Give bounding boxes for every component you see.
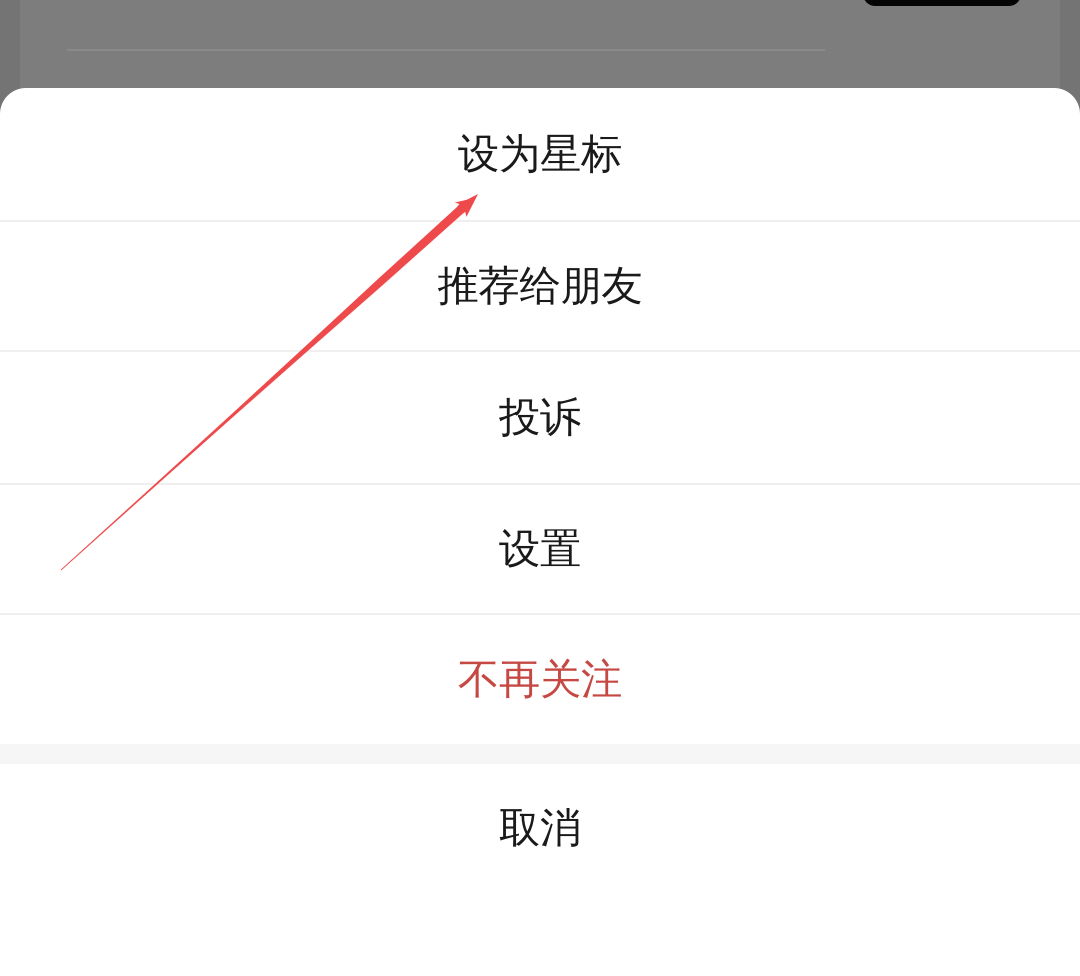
staticText: 取消: [499, 803, 581, 853]
staticText: 设置: [499, 524, 581, 574]
staticText: 不再关注: [458, 654, 622, 705]
staticText: 投诉: [499, 392, 581, 443]
staticText: 设为星标: [458, 129, 622, 179]
button[interactable]: 推荐给朋友: [0, 222, 1080, 350]
button[interactable]: 取消: [0, 764, 1080, 892]
button[interactable]: 设置: [0, 485, 1080, 613]
button[interactable]: 投诉: [0, 352, 1080, 483]
button[interactable]: Dismiss: [0, 0, 1080, 976]
staticText: 推荐给朋友: [437, 261, 642, 311]
button[interactable]: 设为星标: [0, 88, 1080, 220]
button[interactable]: 不再关注: [0, 615, 1080, 744]
